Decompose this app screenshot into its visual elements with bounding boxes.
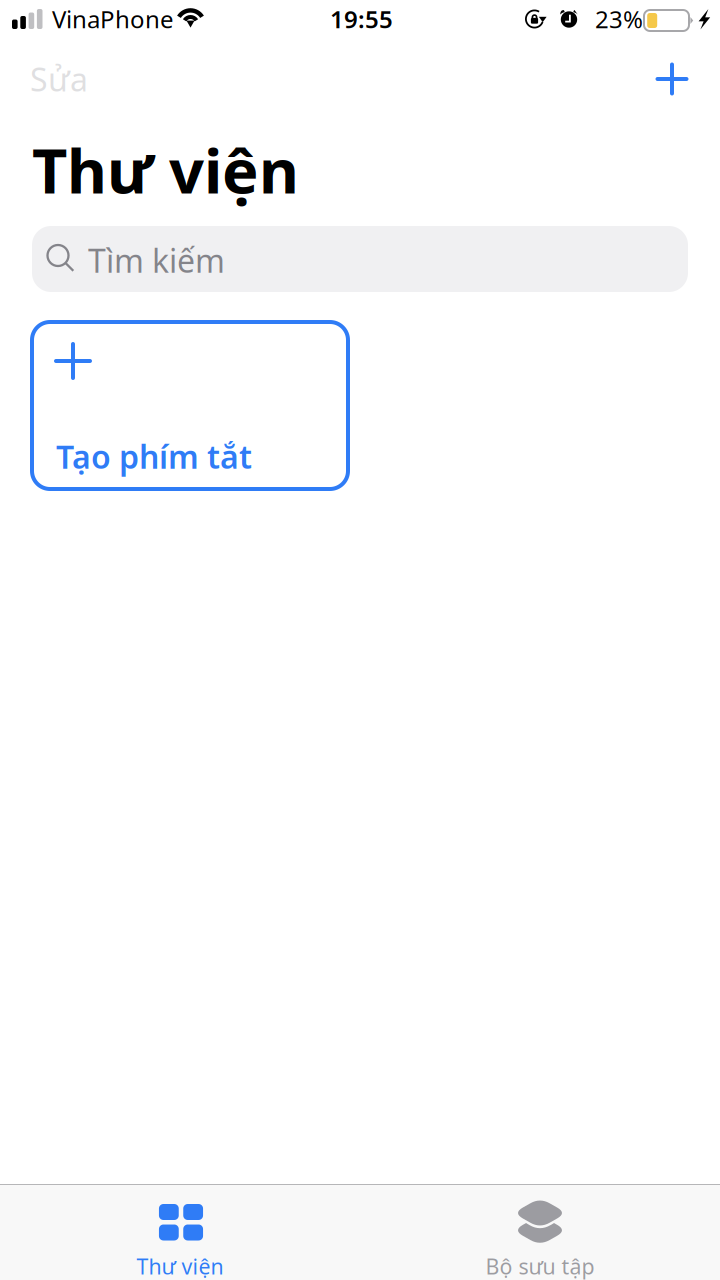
button[interactable]: Thư viện	[0, 1185, 360, 1280]
staticText: 19:55	[330, 3, 393, 35]
staticText: Tạo phím tắt	[56, 435, 252, 477]
button[interactable]: Add shortcut	[650, 57, 694, 101]
staticText: Tìm kiếm	[88, 239, 225, 281]
staticText: Sửa	[30, 58, 88, 100]
button[interactable]: Bộ sưu tập	[360, 1185, 720, 1280]
staticText: 23%	[595, 3, 643, 35]
staticText: VinaPhone	[52, 3, 174, 35]
staticText: Thư viện	[32, 129, 299, 210]
staticText: Bộ sưu tập	[485, 1252, 594, 1280]
button[interactable]: Tạo phím tắt	[32, 322, 348, 489]
staticText: Thư viện	[136, 1252, 223, 1280]
button[interactable]: Tìm kiếm	[32, 226, 688, 292]
button[interactable]: Sửa	[21, 57, 97, 101]
